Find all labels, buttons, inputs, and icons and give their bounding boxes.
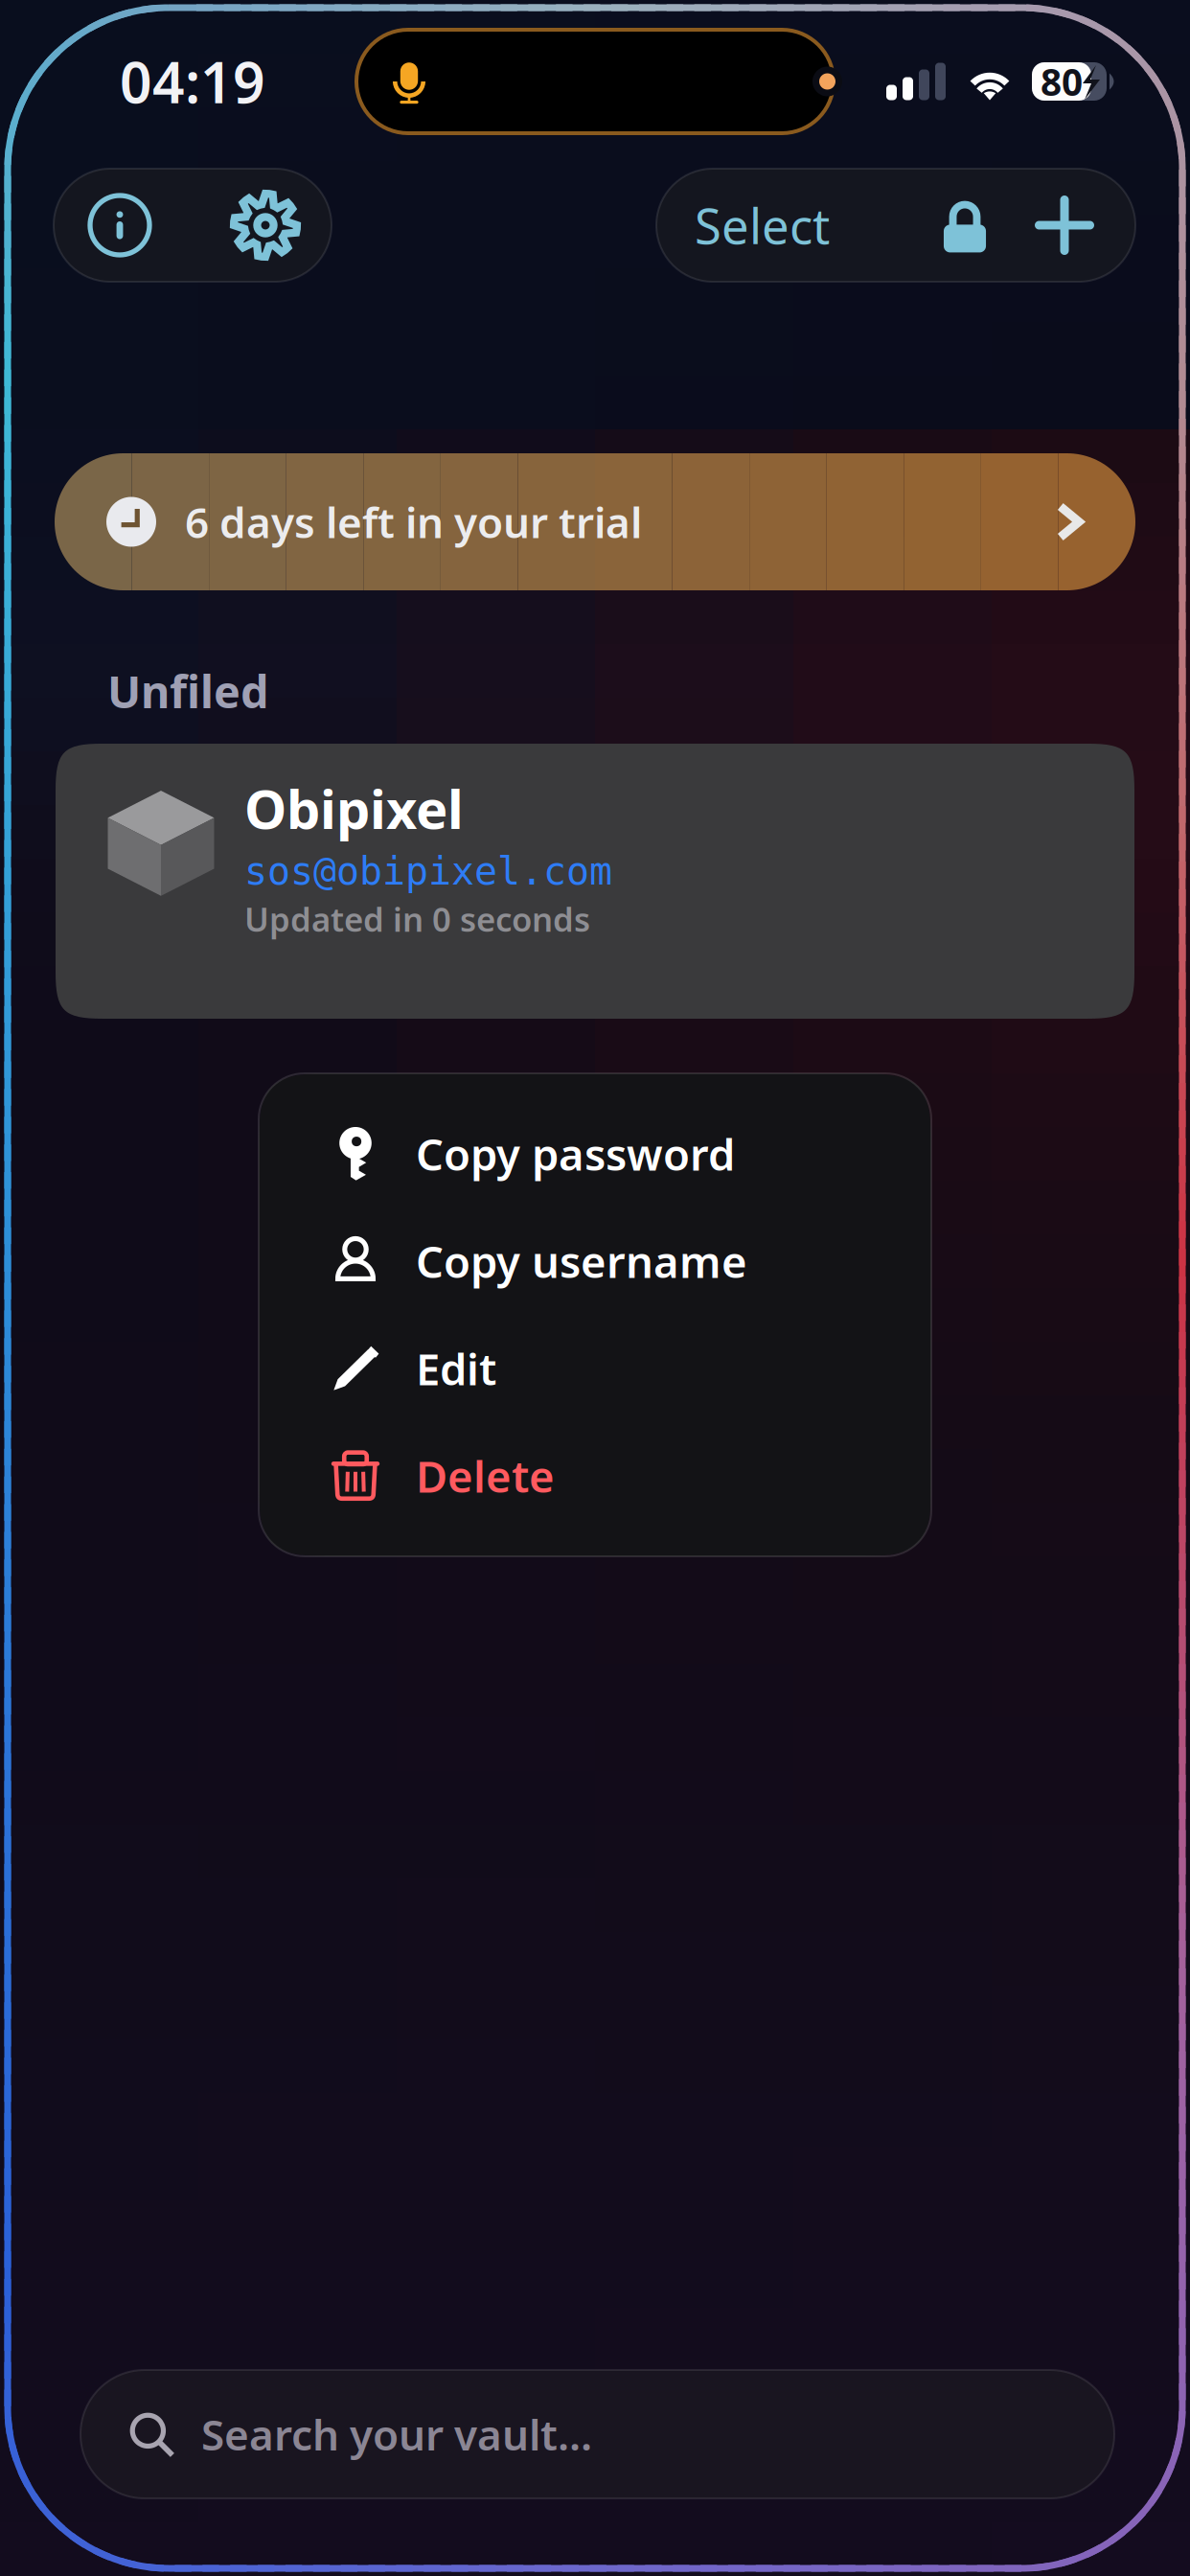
staticText: Edit <box>416 1340 496 1397</box>
button[interactable]: Copy password <box>259 1100 931 1207</box>
button[interactable]: Information <box>67 169 172 282</box>
button[interactable]: Edit <box>259 1315 931 1422</box>
staticText: Updated in 0 seconds <box>244 897 590 941</box>
staticText: 04:19 <box>120 44 265 119</box>
staticText: 6 days left in your trial <box>185 494 642 550</box>
button[interactable]: Search your vault... <box>80 2370 1114 2498</box>
staticText: Unfiled <box>107 661 268 721</box>
button[interactable]: Lock vault <box>915 169 1015 282</box>
staticText: Obipixel <box>244 772 464 844</box>
staticText: Search your vault... <box>201 2406 592 2462</box>
staticText: sos@obipixel.com <box>244 849 612 893</box>
button[interactable]: Copy username <box>259 1207 931 1315</box>
staticText: Delete <box>416 1447 555 1505</box>
button[interactable]: Obipixel <box>56 744 1134 1019</box>
staticText: 80 <box>1041 57 1083 106</box>
button[interactable]: Settings <box>213 169 318 282</box>
button[interactable]: 6 days left in your trial <box>55 453 1135 590</box>
button[interactable]: Add item <box>1015 169 1114 282</box>
staticText: Copy password <box>416 1125 735 1183</box>
button[interactable]: Delete <box>259 1422 931 1529</box>
button[interactable]: Select <box>656 169 830 282</box>
staticText: Copy username <box>416 1232 747 1290</box>
staticText: Select <box>695 193 830 258</box>
